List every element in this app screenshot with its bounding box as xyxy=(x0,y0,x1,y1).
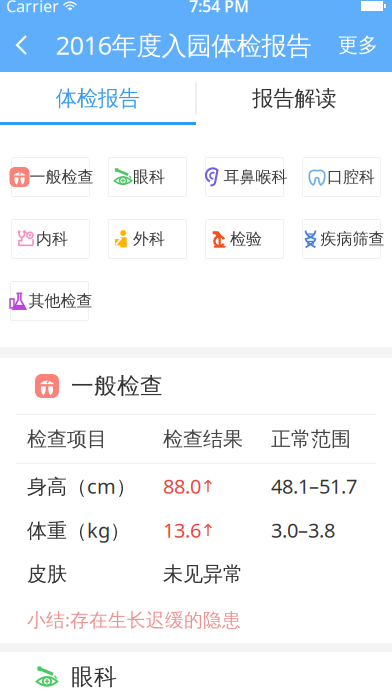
staticText: 体检报告 xyxy=(56,85,140,112)
staticText: 3.0–3.8 xyxy=(271,517,335,543)
staticText: 检验 xyxy=(230,229,262,249)
staticText: 小结:存在生长迟缓的隐患 xyxy=(27,607,241,632)
staticText: 88.0 xyxy=(163,473,201,499)
staticText: 内科 xyxy=(36,229,68,249)
staticText: 口腔科 xyxy=(327,167,375,187)
staticText: 皮肤 xyxy=(27,562,67,586)
staticText: 其他检查 xyxy=(28,291,92,311)
staticText: 48.1–51.7 xyxy=(271,473,357,499)
staticText: 外科 xyxy=(133,229,165,249)
staticText: 一般检查 xyxy=(29,167,93,187)
button[interactable]: 耳鼻喉科 xyxy=(205,157,284,197)
staticText: 眼科 xyxy=(133,167,165,187)
button[interactable]: 疾病筛查 xyxy=(302,219,381,259)
staticText: 一般检查 xyxy=(71,372,163,400)
staticText: 未见异常 xyxy=(163,562,243,586)
staticText: 正常范围 xyxy=(271,427,351,451)
button[interactable]: 口腔科 xyxy=(302,157,381,197)
staticText: 身高（cm） xyxy=(27,473,136,499)
button[interactable]: 内科 xyxy=(11,219,90,259)
button[interactable]: 检验 xyxy=(205,219,284,259)
staticText: 更多 xyxy=(338,33,378,57)
button[interactable]: 体检报告 xyxy=(0,72,195,125)
staticText: 7:54 PM xyxy=(189,0,249,17)
button[interactable]: Back xyxy=(0,18,43,72)
staticText: Carrier xyxy=(6,0,59,17)
button[interactable]: 其他检查 xyxy=(10,281,89,321)
staticText: 检查结果 xyxy=(163,427,243,451)
staticText: 体重（kg） xyxy=(27,517,130,543)
staticText: 耳鼻喉科 xyxy=(223,167,287,187)
staticText: 眼科 xyxy=(71,663,117,691)
button[interactable]: 眼科 xyxy=(108,157,187,197)
staticText: 疾病筛查 xyxy=(320,229,384,249)
staticText: 2016年度入园体检报告 xyxy=(55,28,311,62)
staticText: 13.6 xyxy=(163,517,201,543)
button[interactable]: 外科 xyxy=(108,219,187,259)
staticText: 报告解读 xyxy=(252,85,336,112)
button[interactable]: 更多 xyxy=(324,18,392,72)
button[interactable]: 报告解读 xyxy=(196,72,392,125)
button[interactable]: 一般检查 xyxy=(11,157,90,197)
staticText: 检查项目 xyxy=(27,427,107,451)
